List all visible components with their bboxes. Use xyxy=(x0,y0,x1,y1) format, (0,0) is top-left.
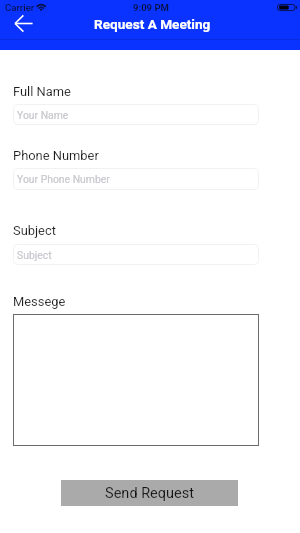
other: Battery xyxy=(277,4,297,11)
staticText: Your Name xyxy=(17,109,69,121)
button[interactable]: Subject xyxy=(13,244,259,265)
other: Wi-Fi xyxy=(34,0,48,14)
staticText: Phone Number xyxy=(13,148,99,163)
button[interactable]: Messege xyxy=(13,314,259,446)
staticText: Subject xyxy=(13,223,56,238)
staticText: Send Request xyxy=(105,485,194,502)
staticText: Full Name xyxy=(13,84,71,99)
button[interactable]: Send Request xyxy=(61,480,238,506)
staticText: Carrier xyxy=(5,2,35,13)
staticText: Request A Meeting xyxy=(94,16,211,32)
staticText: Messege xyxy=(13,294,66,309)
button[interactable]: Your Phone Number xyxy=(13,168,259,190)
staticText: Your Phone Number xyxy=(17,173,110,185)
button[interactable]: Back xyxy=(9,11,35,37)
staticText: 9:09 PM xyxy=(133,2,169,13)
button[interactable]: Your Name xyxy=(13,104,259,125)
staticText: Subject xyxy=(17,249,52,261)
